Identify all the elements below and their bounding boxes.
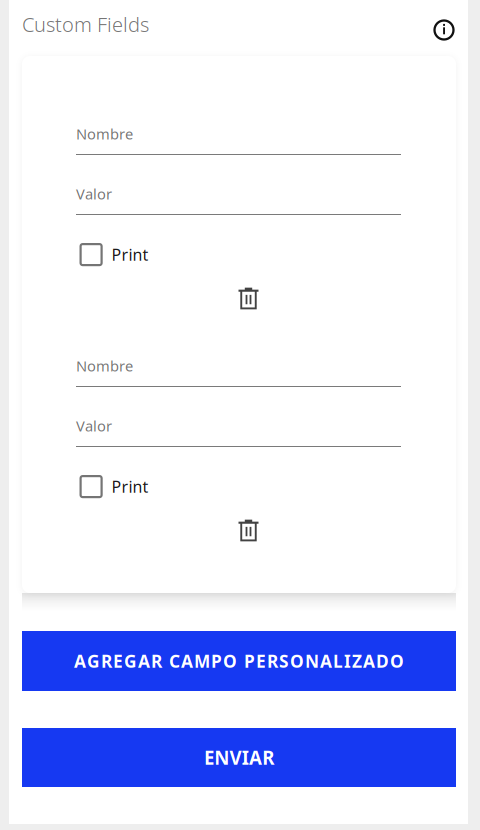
staticText: AGREGAR CAMPO PERSONALIZADO: [74, 649, 404, 672]
button[interactable]: Print: [81, 474, 181, 500]
button[interactable]: AGREGAR CAMPO PERSONALIZADO: [22, 631, 456, 691]
button[interactable]: ENVIAR: [22, 728, 456, 787]
staticText: Valor: [76, 416, 112, 435]
textField[interactable]: Valor: [76, 426, 401, 452]
button[interactable]: Delete custom field: [228, 510, 268, 550]
staticText: Nombre: [76, 356, 133, 375]
button[interactable]: Information: [427, 13, 461, 47]
staticText: ENVIAR: [204, 745, 274, 770]
staticText: Valor: [76, 184, 112, 203]
staticText: Nombre: [76, 124, 133, 143]
textField[interactable]: Nombre: [76, 134, 401, 160]
button[interactable]: Delete custom field: [228, 278, 268, 318]
textField[interactable]: Valor: [76, 194, 401, 220]
textField[interactable]: Nombre: [76, 366, 401, 392]
staticText: Print: [112, 244, 149, 265]
staticText: Custom Fields: [22, 11, 149, 38]
button[interactable]: Print: [81, 242, 181, 268]
staticText: Print: [112, 476, 149, 497]
